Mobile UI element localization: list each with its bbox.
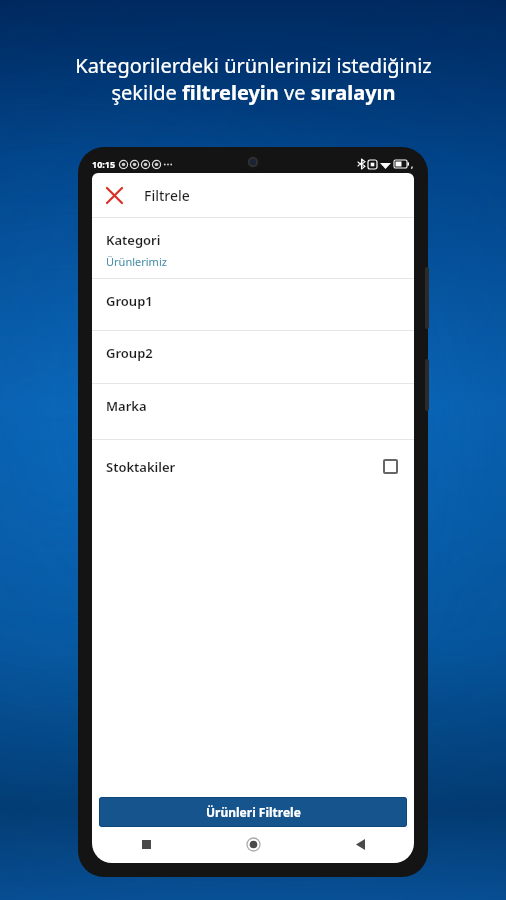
button[interactable]: Stoktakiler [92, 440, 414, 493]
staticText: Group2 [106, 344, 153, 362]
staticText: Marka [106, 397, 147, 415]
staticText: 10:15 [92, 158, 116, 170]
button[interactable]: Group1 [92, 279, 414, 330]
staticText: Ürünleri Filtrele [206, 804, 301, 820]
button[interactable]: Kategori [92, 218, 414, 278]
staticText: Ürünlerimiz [106, 254, 167, 269]
staticText: , [411, 159, 414, 170]
button[interactable]: Ürünleri Filtrele [99, 797, 407, 827]
button[interactable]: Geri [307, 827, 414, 861]
button[interactable]: Kapat [92, 173, 136, 217]
button[interactable]: Group2 [92, 331, 414, 383]
button[interactable]: Son uygulamalar [92, 827, 200, 861]
staticText: Group1 [106, 292, 153, 310]
button[interactable]: Ana ekran [200, 827, 307, 861]
staticText: Stoktakiler [106, 458, 176, 476]
staticText: Kategori [106, 231, 161, 249]
staticText: Filtrele [144, 186, 190, 205]
button[interactable]: Marka [92, 384, 414, 439]
staticText: Kategorilerdeki ürünlerinizi istediğiniz… [75, 52, 432, 106]
